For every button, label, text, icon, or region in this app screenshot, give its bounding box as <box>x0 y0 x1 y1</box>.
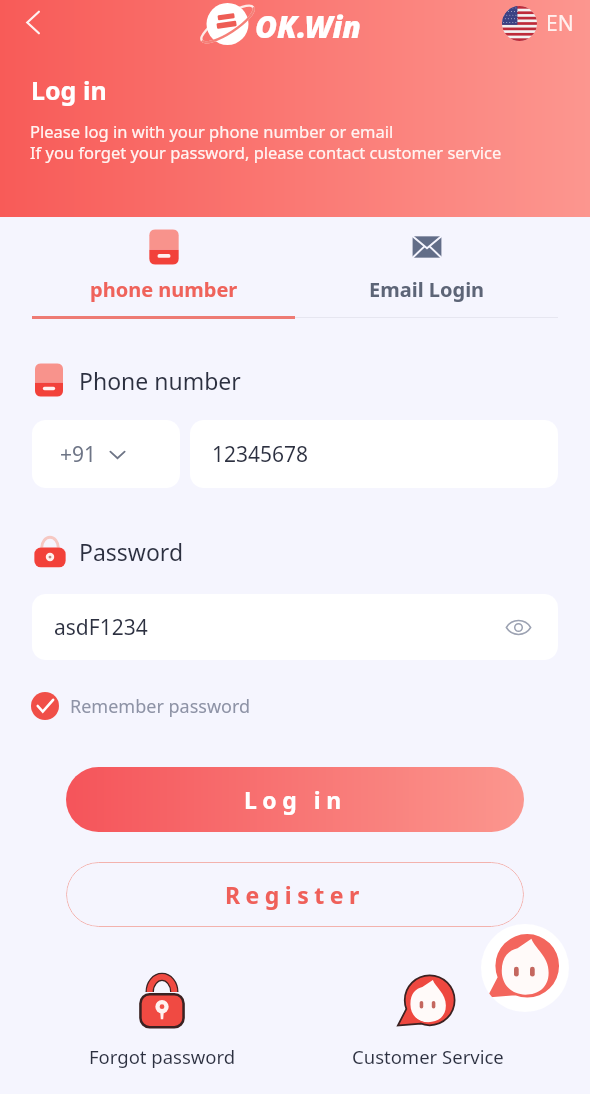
staticText: Log in <box>31 73 107 107</box>
staticText: Log in <box>244 784 347 815</box>
button[interactable]: Log in <box>66 767 524 832</box>
staticText: phone number <box>90 276 238 303</box>
staticText: Register <box>225 879 365 910</box>
staticText: OK.Win <box>255 6 362 47</box>
button[interactable]: Back <box>11 0 55 44</box>
staticText: Customer Service <box>352 1044 504 1069</box>
button[interactable]: +91 <box>32 420 180 488</box>
button[interactable]: Forgot password <box>82 974 242 1069</box>
button[interactable]: 12345678 <box>190 420 558 488</box>
staticText: If you forget your password, please cont… <box>30 141 502 163</box>
button[interactable]: Email Login <box>295 217 558 318</box>
button[interactable]: Remember password <box>31 692 251 720</box>
staticText: 12345678 <box>212 440 309 469</box>
button[interactable]: EN <box>502 6 574 41</box>
button[interactable]: asdF1234 <box>32 594 558 660</box>
staticText: Password <box>79 536 184 567</box>
staticText: Please log in with your phone number or … <box>30 120 394 142</box>
staticText: EN <box>546 9 574 38</box>
button[interactable]: Customer Service <box>347 974 509 1069</box>
button[interactable]: Show password <box>500 609 536 645</box>
staticText: Remember password <box>70 694 251 719</box>
staticText: Email Login <box>369 276 485 303</box>
staticText: +91 <box>60 440 97 469</box>
button[interactable]: phone number <box>32 217 295 318</box>
staticText: asdF1234 <box>54 613 148 642</box>
button[interactable]: Register <box>66 862 524 927</box>
button[interactable]: Customer support chat <box>481 924 569 1012</box>
staticText: Phone number <box>79 365 241 396</box>
staticText: Forgot password <box>89 1044 236 1069</box>
